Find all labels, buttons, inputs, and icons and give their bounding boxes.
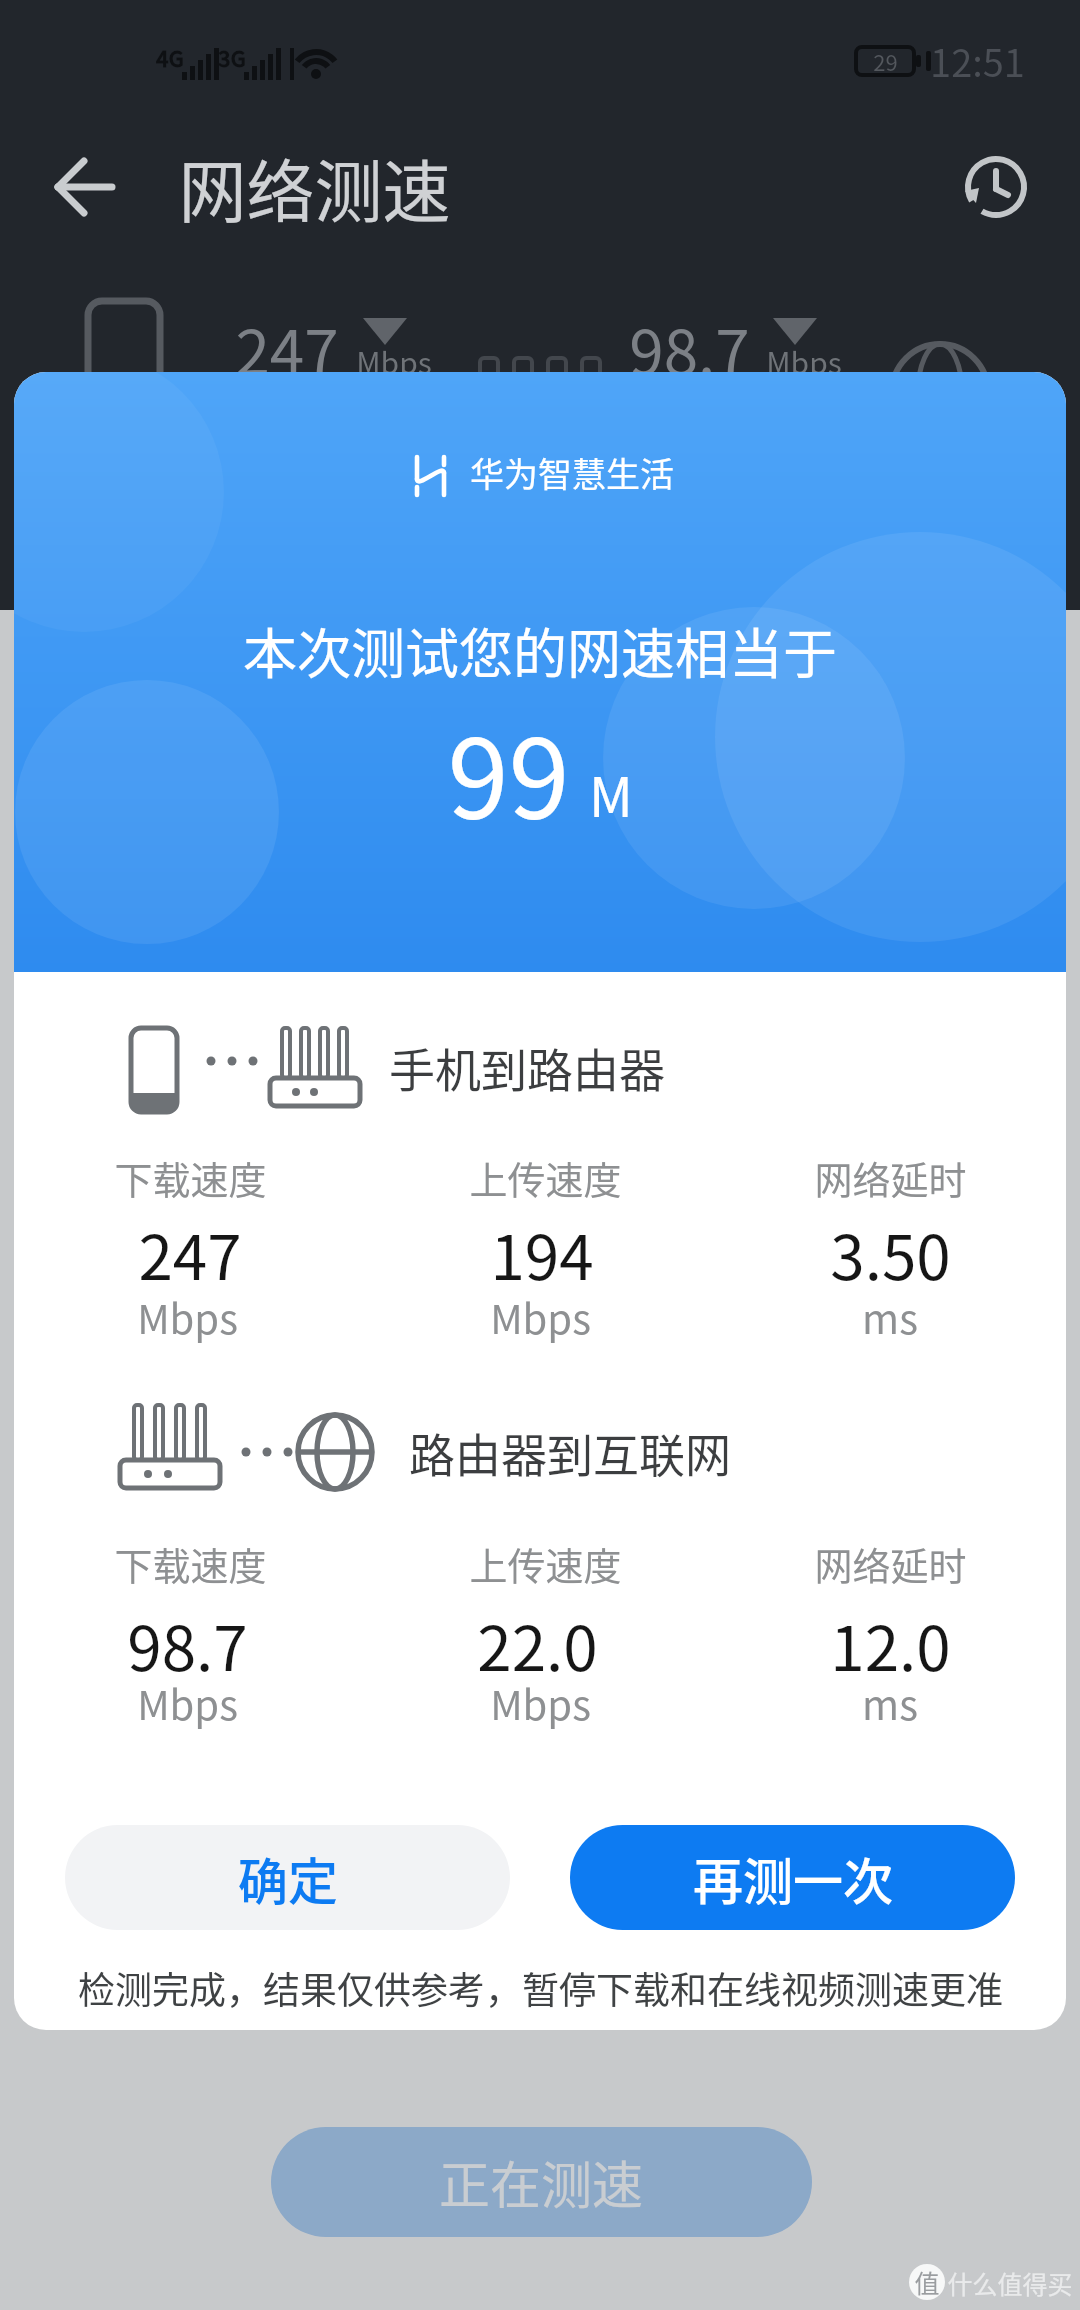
staticText: 247 — [235, 303, 339, 393]
staticText: Mbps — [490, 1674, 591, 1732]
staticText: 什么值得买 — [947, 2265, 1073, 2301]
staticText: 194 — [490, 1208, 594, 1298]
staticText: 下载速度 — [114, 1150, 267, 1205]
staticText: 上传速度 — [469, 1150, 622, 1205]
staticText: 29 — [873, 45, 898, 77]
staticText: ms — [862, 1674, 918, 1732]
staticText: 12.0 — [830, 1599, 951, 1689]
staticText: M — [589, 754, 633, 832]
button[interactable]: 确定 — [65, 1825, 510, 1930]
staticText: 值 — [914, 2264, 940, 2300]
button[interactable]: 再测一次 — [570, 1825, 1015, 1930]
staticText: 22.0 — [477, 1599, 598, 1689]
staticText: Mbps — [356, 339, 432, 382]
staticText: 3G — [218, 41, 246, 73]
staticText: 确定 — [238, 1842, 338, 1914]
staticText: ms — [862, 1288, 918, 1346]
staticText: 再测一次 — [693, 1842, 893, 1914]
staticText: 路由器到互联网 — [409, 1419, 731, 1486]
staticText: 4G — [156, 41, 184, 73]
staticText: Mbps — [137, 1674, 238, 1732]
staticText: 12:51 — [930, 33, 1025, 88]
staticText: 上传速度 — [469, 1536, 622, 1591]
button[interactable] — [40, 152, 130, 222]
staticText: Mbps — [137, 1288, 238, 1346]
staticText: Mbps — [766, 339, 842, 382]
button[interactable] — [962, 153, 1030, 221]
staticText: 本次测试您的网速相当于 — [243, 611, 837, 689]
staticText: 检测完成，结果仅供参考，暂停下载和在线视频测速更准 — [78, 1961, 1003, 2015]
staticText: 3.50 — [830, 1208, 951, 1298]
staticText: 网络延时 — [814, 1536, 967, 1591]
staticText: 网络延时 — [814, 1150, 967, 1205]
staticText: 网络测速 — [178, 138, 451, 236]
staticText: 98.7 — [629, 303, 750, 393]
staticText: 98.7 — [127, 1599, 248, 1689]
staticText: 华为智慧生活 — [470, 448, 674, 497]
button[interactable]: 正在测速 — [271, 2127, 812, 2237]
staticText: 99 — [447, 691, 570, 850]
staticText: 下载速度 — [114, 1536, 267, 1591]
staticText: 手机到路由器 — [389, 1034, 665, 1101]
staticText: 247 — [138, 1208, 242, 1298]
staticText: Mbps — [490, 1288, 591, 1346]
staticText: 正在测速 — [439, 2145, 644, 2219]
